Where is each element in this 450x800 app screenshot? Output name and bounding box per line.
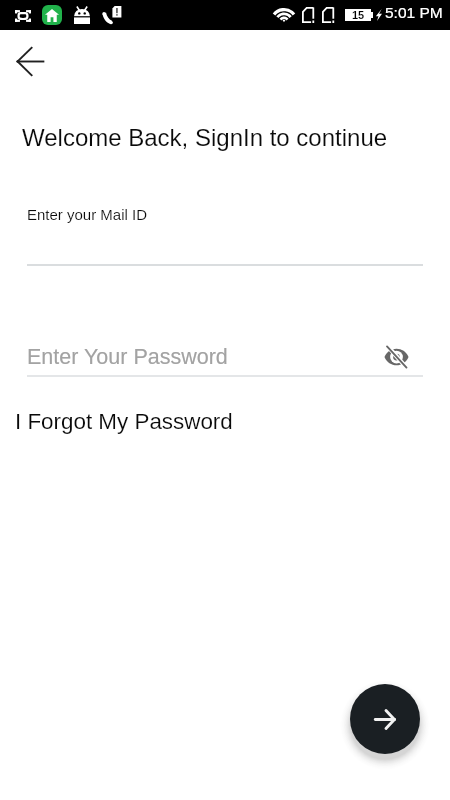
staticText: Enter Your Password bbox=[27, 345, 228, 369]
staticText: 15 bbox=[352, 9, 365, 21]
button[interactable]: Show password bbox=[378, 339, 414, 375]
button[interactable]: Continue bbox=[350, 684, 420, 754]
button[interactable]: I Forgot My Password bbox=[15, 409, 233, 434]
staticText: 5:01 PM bbox=[385, 4, 443, 21]
button[interactable]: Back bbox=[8, 39, 52, 83]
staticText: Enter your Mail ID bbox=[27, 206, 148, 223]
staticText: Welcome Back, SignIn to continue bbox=[22, 124, 388, 151]
